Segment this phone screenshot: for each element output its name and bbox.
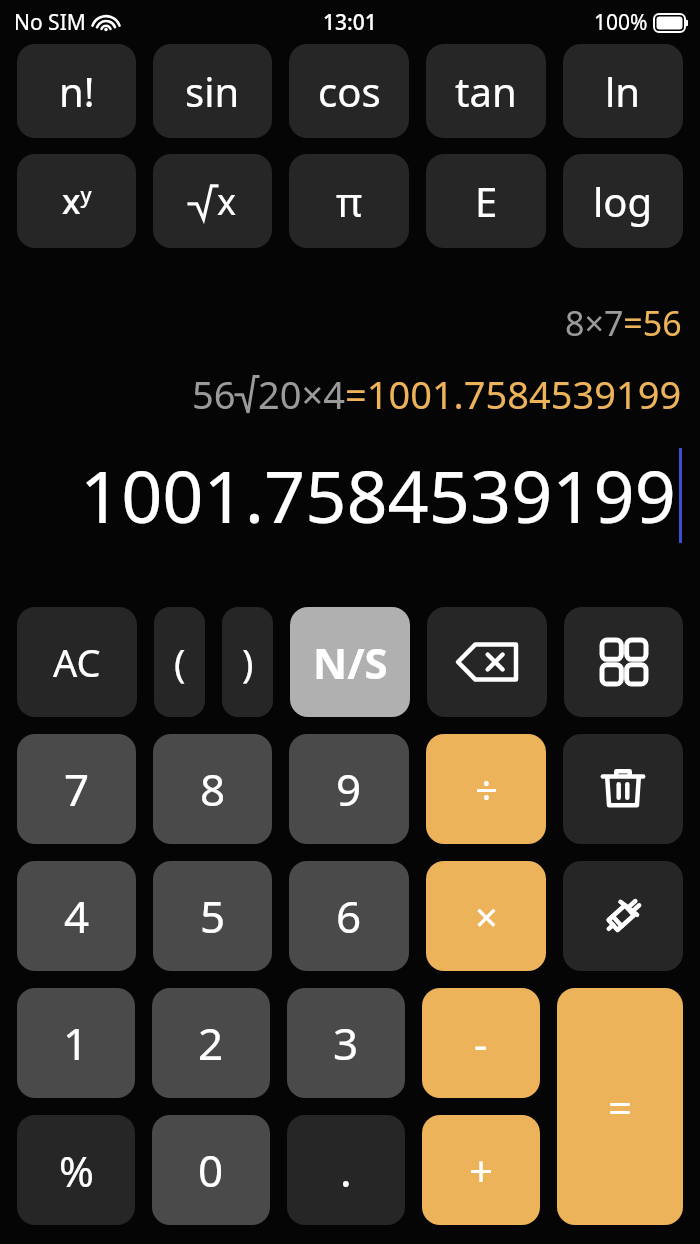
button[interactable]: + <box>422 1115 540 1225</box>
staticText: 8×7=56 <box>565 300 682 346</box>
staticText: = <box>608 1078 633 1135</box>
button[interactable]: 0 <box>152 1115 270 1225</box>
button[interactable]: x <box>153 154 272 248</box>
staticText: tan <box>455 64 517 118</box>
button[interactable]: 4 <box>17 861 136 971</box>
button[interactable]: 8 <box>153 734 272 844</box>
staticText: cos <box>318 64 381 118</box>
staticText: 0 <box>198 1140 224 1200</box>
staticText: 1 <box>63 1013 89 1073</box>
button[interactable]: Clear history <box>563 734 683 844</box>
button[interactable]: × <box>426 861 546 971</box>
button[interactable]: % <box>17 1115 135 1225</box>
staticText: 8 <box>200 759 226 819</box>
staticText: 100% <box>594 8 648 37</box>
button[interactable]: 1 <box>17 988 135 1098</box>
button[interactable]: ) <box>222 607 273 717</box>
staticText: ( <box>174 636 186 688</box>
button[interactable]: Apps <box>564 607 683 717</box>
staticText: 7 <box>64 759 90 819</box>
button[interactable]: 6 <box>289 861 409 971</box>
staticText: n! <box>59 64 95 118</box>
button[interactable]: n! <box>17 44 136 138</box>
button[interactable]: ( <box>154 607 205 717</box>
button[interactable]: Backspace <box>427 607 547 717</box>
staticText: % <box>59 1142 94 1199</box>
staticText: ln <box>605 64 641 118</box>
staticText: AC <box>53 636 101 688</box>
staticText: ÷ <box>475 762 498 816</box>
button[interactable]: . <box>287 1115 405 1225</box>
staticText: No SIM <box>14 8 86 37</box>
staticText: π <box>336 174 363 228</box>
button[interactable]: E <box>426 154 546 248</box>
button[interactable]: = <box>557 988 683 1225</box>
staticText: + <box>469 1142 494 1199</box>
button[interactable]: sin <box>153 44 272 138</box>
staticText: 9 <box>336 759 362 819</box>
button[interactable]: N/S <box>290 607 410 717</box>
button[interactable]: π <box>289 154 409 248</box>
button[interactable]: cos <box>289 44 409 138</box>
staticText: . <box>340 1140 352 1200</box>
staticText: 20×4=1001.7584539199 <box>258 368 682 420</box>
button[interactable]: 5 <box>153 861 272 971</box>
button[interactable]: 9 <box>289 734 409 844</box>
button[interactable]: tan <box>426 44 546 138</box>
staticText: N/S <box>313 634 388 691</box>
button[interactable]: 2 <box>152 988 270 1098</box>
staticText: E <box>475 174 498 228</box>
staticText: x <box>217 177 237 226</box>
staticText: 6 <box>336 886 362 946</box>
button[interactable]: 3 <box>287 988 405 1098</box>
staticText: 56 <box>192 368 236 420</box>
staticText: 3 <box>333 1013 359 1073</box>
staticText: sin <box>185 64 240 118</box>
staticText: 1001.7584539199 <box>80 446 676 544</box>
staticText: 2 <box>198 1013 224 1073</box>
button[interactable]: - <box>422 988 540 1098</box>
staticText: 13:01 <box>323 8 377 37</box>
staticText: × <box>475 889 498 943</box>
button[interactable]: 7 <box>17 734 136 844</box>
button[interactable]: xy <box>17 154 136 248</box>
button[interactable]: ln <box>563 44 683 138</box>
button[interactable]: Theme <box>563 861 683 971</box>
staticText: 4 <box>64 886 90 946</box>
staticText: 5 <box>200 886 226 946</box>
staticText: - <box>474 1015 488 1072</box>
button[interactable]: log <box>563 154 683 248</box>
button[interactable]: ÷ <box>426 734 546 844</box>
button[interactable]: AC <box>17 607 137 717</box>
staticText: ) <box>242 636 254 688</box>
staticText: xy <box>62 178 92 224</box>
staticText: log <box>593 174 653 228</box>
